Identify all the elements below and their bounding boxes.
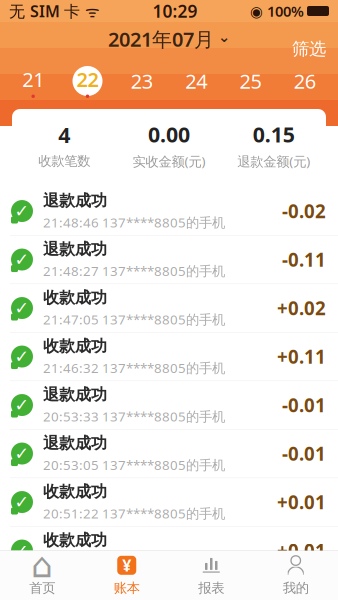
staticText: 21 [22, 66, 44, 93]
staticText: 退款成功 [43, 433, 107, 453]
button[interactable]: 2021年07月 [98, 22, 240, 56]
staticText: 20:53:33 137****8805的手机 [43, 407, 225, 425]
staticText: 20:50:12 137****8805的手机 [43, 553, 225, 571]
button[interactable]: ✓ [0, 381, 338, 429]
staticText: 0.00 [148, 120, 190, 148]
button[interactable]: ✓ [0, 187, 338, 235]
staticText: 21:47:05 137****8805的手机 [43, 310, 225, 328]
staticText: 收款成功 [43, 530, 107, 550]
staticText: 21:48:46 137****8805的手机 [43, 213, 225, 231]
staticText: 无 SIM 卡 ᯤ [9, 0, 100, 22]
staticText: 退款成功 [43, 239, 107, 259]
staticText: 筛选 [292, 38, 326, 60]
staticText: 首页 [29, 580, 55, 596]
staticText: +0.01 [277, 490, 326, 514]
staticText: 报表 [198, 580, 224, 596]
button[interactable]: 筛选 [280, 12, 338, 66]
staticText: 我的 [283, 580, 309, 596]
staticText: ✓ [14, 347, 29, 366]
staticText: ✓ [14, 492, 29, 512]
staticText: ⌄ [218, 29, 230, 45]
staticText: ⌂ [31, 546, 53, 585]
button[interactable]: 21 [6, 63, 60, 99]
staticText: 退款成功 [43, 191, 107, 211]
staticText: 21:46:32 137****8805的手机 [43, 359, 225, 377]
button[interactable]: 25 [223, 63, 278, 99]
staticText: ✓ [14, 541, 29, 560]
staticText: 收款成功 [43, 482, 107, 502]
staticText: ✓ [14, 201, 29, 221]
staticText: ✓ [14, 444, 29, 463]
staticText: 0.15 [253, 120, 295, 148]
staticText: 实收金额(元) [132, 152, 205, 170]
staticText: 23 [131, 68, 153, 94]
button[interactable]: 我的 [253, 551, 338, 600]
button[interactable]: ⌂ [0, 551, 84, 600]
button[interactable]: ✓ [0, 284, 338, 332]
staticText: +0.02 [277, 296, 326, 320]
staticText: -0.01 [282, 393, 326, 417]
staticText: 账本 [114, 580, 140, 596]
staticText: 收款成功 [43, 336, 107, 356]
staticText: +0.01 [277, 538, 326, 563]
staticText: 20:53:05 137****8805的手机 [43, 456, 225, 474]
button[interactable]: ✓ [0, 235, 338, 284]
staticText: -0.11 [282, 247, 326, 272]
staticText: 2021年07月 [108, 26, 214, 52]
staticText: ✓ [14, 298, 29, 318]
button[interactable]: 报表 [169, 551, 253, 600]
staticText: 收款笔数 [38, 153, 90, 169]
staticText: +0.11 [277, 344, 326, 369]
button[interactable]: ✓ [0, 526, 338, 575]
staticText: 退款成功 [43, 385, 107, 405]
staticText: 25 [239, 68, 261, 94]
staticText: ✓ [14, 395, 29, 415]
staticText: 22 [76, 66, 98, 93]
staticText: ✓ [14, 250, 29, 269]
staticText: 21:48:27 137****8805的手机 [43, 262, 225, 280]
button[interactable]: 26 [278, 63, 332, 99]
button[interactable]: 23 [115, 63, 169, 99]
staticText: 20:51:22 137****8805的手机 [43, 504, 225, 522]
button[interactable]: ✓ [0, 332, 338, 381]
staticText: 26 [294, 68, 316, 94]
staticText: 退款金额(元) [237, 152, 310, 170]
staticText: 收款成功 [43, 288, 107, 308]
staticText: ◉ 100% [250, 1, 304, 21]
button[interactable]: ✓ [0, 429, 338, 478]
button[interactable]: ¥ [84, 551, 169, 600]
staticText: ¥ [122, 555, 131, 576]
button[interactable]: 22 [60, 63, 115, 99]
staticText: 10:29 [152, 0, 197, 22]
button[interactable]: ✓ [0, 478, 338, 526]
staticText: 4 [58, 121, 70, 149]
staticText: -0.01 [282, 441, 326, 466]
staticText: 24 [185, 68, 207, 94]
button[interactable]: 24 [169, 63, 223, 99]
staticText: -0.02 [282, 199, 326, 223]
